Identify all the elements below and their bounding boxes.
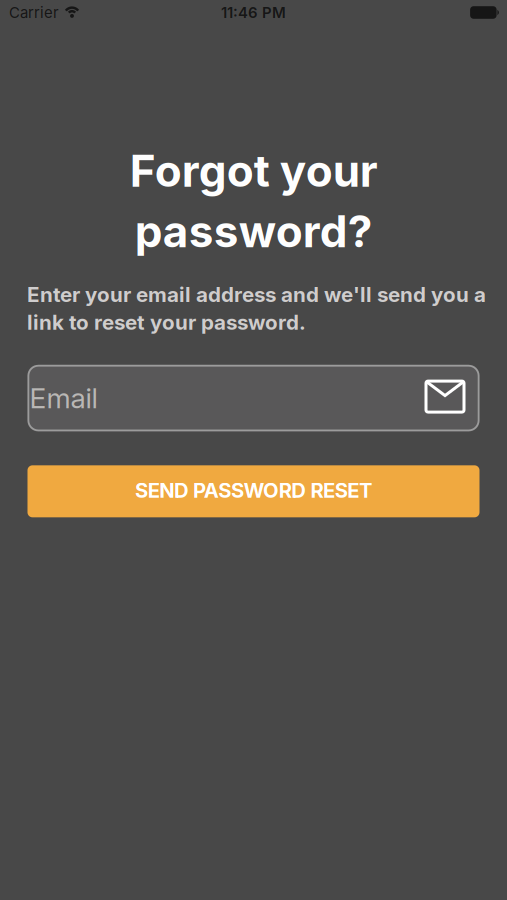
staticText: Enter your email address and we'll send … bbox=[27, 282, 486, 335]
staticText: SEND PASSWORD RESET bbox=[135, 478, 372, 503]
staticText: Forgot your password? bbox=[129, 144, 377, 258]
staticText: Carrier bbox=[9, 3, 59, 21]
button[interactable]: Email bbox=[27, 365, 479, 431]
staticText: 11:46 PM bbox=[221, 3, 286, 21]
staticText: Email bbox=[29, 381, 97, 415]
button[interactable]: SEND PASSWORD RESET bbox=[27, 465, 479, 517]
